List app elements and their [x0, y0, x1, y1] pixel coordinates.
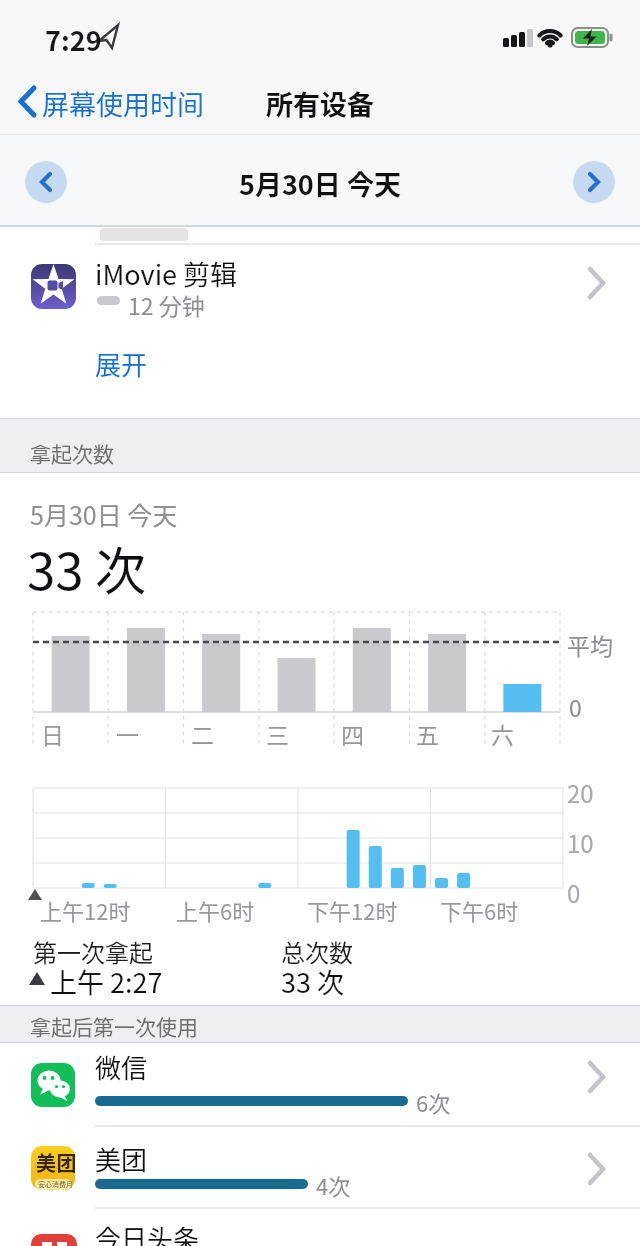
staticText: 6次 — [416, 1086, 451, 1118]
staticText: 总次数 — [281, 934, 353, 969]
staticText: iMovie 剪辑 — [95, 254, 238, 293]
staticText: 一 — [116, 717, 139, 750]
staticText: 安心消费月 — [38, 1179, 73, 1189]
staticText: 4次 — [316, 1169, 351, 1201]
button[interactable] — [10, 78, 225, 126]
button[interactable] — [26, 161, 66, 201]
staticText: 今日头条 — [95, 1219, 200, 1246]
staticText: 展开 — [95, 345, 148, 383]
staticText: 上午12时 — [40, 894, 131, 926]
staticText: 下午12时 — [307, 894, 398, 926]
staticText: 10 — [567, 825, 594, 860]
staticText: 下午6时 — [440, 894, 519, 926]
staticText: 33 次 — [281, 962, 345, 1001]
staticText: 屏幕使用时间 — [42, 84, 204, 123]
staticText: 五 — [416, 717, 439, 750]
staticText: 拿起后第一次使用 — [30, 1011, 198, 1041]
staticText: 六 — [491, 717, 514, 750]
staticText: 美团 — [36, 1148, 77, 1177]
staticText: 上午 2:27 — [50, 962, 163, 1001]
staticText: 5月30日 今天 — [30, 496, 178, 532]
staticText: 日 — [41, 717, 64, 750]
staticText: 20 — [567, 775, 594, 810]
button[interactable] — [0, 245, 640, 330]
staticText: 二 — [191, 717, 214, 750]
staticText: 0 — [567, 875, 581, 910]
staticText: 上午6时 — [176, 894, 255, 926]
staticText: 四 — [341, 717, 364, 750]
staticText: 美团 — [95, 1140, 148, 1178]
staticText: 5月30日 今天 — [239, 164, 401, 203]
button[interactable] — [0, 1043, 640, 1126]
staticText: 平均 — [567, 628, 613, 661]
staticText: 三 — [266, 717, 289, 750]
staticText: 12 分钟 — [128, 288, 205, 321]
button[interactable] — [0, 1127, 640, 1208]
staticText: 所有设备 — [266, 84, 374, 123]
staticText: 0 — [569, 690, 582, 723]
staticText: 拿起次数 — [30, 438, 114, 468]
button[interactable] — [88, 338, 158, 380]
button[interactable] — [0, 1209, 640, 1246]
staticText: 微信 — [95, 1048, 148, 1086]
staticText: 7:29 — [45, 20, 102, 59]
staticText: 第一次拿起 — [33, 934, 153, 969]
button[interactable] — [574, 161, 614, 201]
staticText: 33 次 — [27, 531, 147, 605]
